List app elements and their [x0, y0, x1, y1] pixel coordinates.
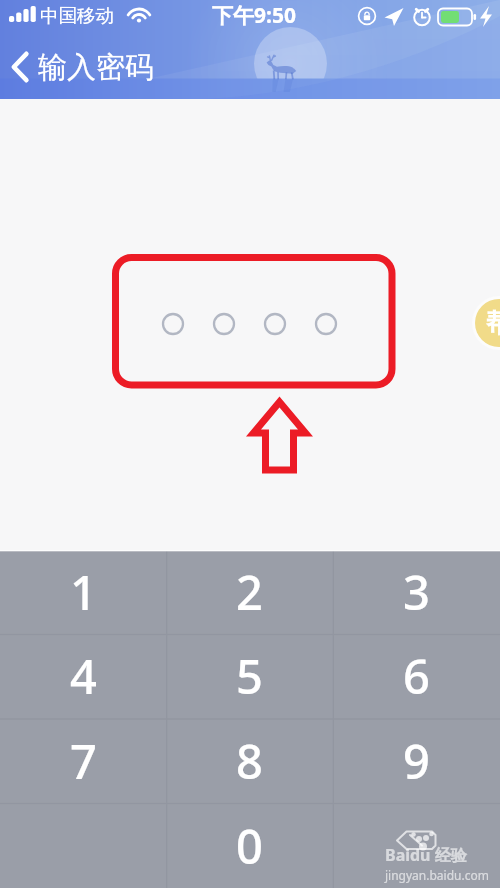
button[interactable]: 6 [333, 634, 500, 718]
staticText: 7 [70, 729, 97, 793]
staticText: 3 [403, 560, 430, 624]
staticText: 5 [236, 644, 263, 708]
staticText: 下午9:50 [212, 1, 296, 30]
staticText: jingyan.baidu.com [385, 867, 489, 883]
button[interactable]: Help [472, 296, 500, 350]
staticText: 6 [403, 644, 430, 708]
button[interactable]: Back [4, 50, 38, 84]
button[interactable]: 9 [333, 718, 500, 803]
staticText: 2 [236, 560, 263, 624]
button[interactable] [333, 803, 500, 888]
staticText: 帮 [486, 307, 500, 340]
button[interactable]: 5 [166, 634, 333, 718]
staticText: 8 [236, 729, 263, 793]
button[interactable]: 4 [0, 634, 166, 718]
button[interactable]: 3 [333, 550, 500, 634]
staticText: 1 [70, 560, 97, 624]
button[interactable]: 1 [0, 550, 166, 634]
button[interactable] [0, 264, 500, 384]
staticText: 4 [70, 644, 97, 708]
staticText: 9 [403, 729, 430, 793]
button[interactable]: 0 [166, 803, 333, 888]
button[interactable]: 7 [0, 718, 166, 803]
staticText: 输入密码 [38, 49, 154, 86]
button[interactable]: 8 [166, 718, 333, 803]
staticText: Baidu 经验 [385, 844, 467, 866]
staticText: 0 [236, 814, 263, 878]
staticText: 中国移动 [40, 4, 114, 27]
button[interactable]: 2 [166, 550, 333, 634]
